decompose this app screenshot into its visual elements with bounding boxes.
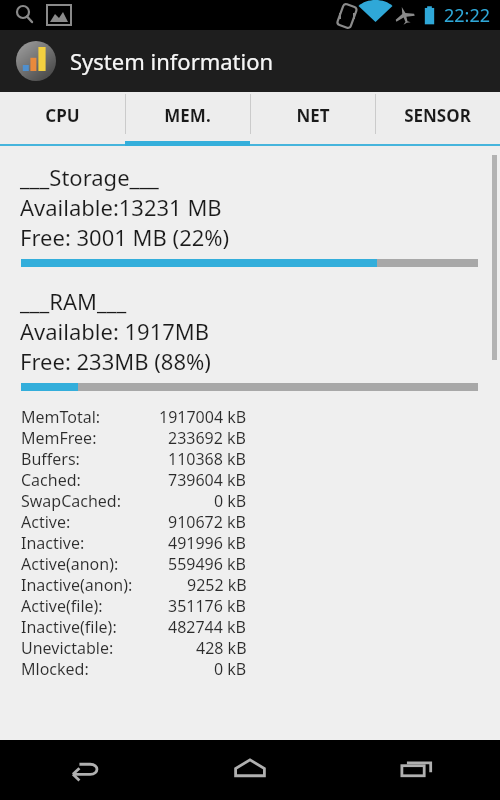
staticText: Inactive(anon):: [21, 574, 133, 595]
staticText: System information: [70, 46, 274, 76]
staticText: MemTotal:: [21, 406, 101, 427]
staticText: Active(anon):: [21, 553, 119, 574]
button[interactable]: Home: [166, 740, 333, 800]
staticText: Unevictable:: [21, 637, 114, 658]
staticText: Buffers:: [21, 448, 80, 469]
staticText: 910672 kB: [168, 511, 247, 532]
staticText: Available: 1917MB: [20, 316, 210, 346]
staticText: 559496 kB: [168, 553, 247, 574]
button[interactable]: Recents: [333, 740, 500, 800]
button[interactable]: System information: [0, 30, 500, 92]
staticText: Active:: [21, 511, 71, 532]
staticText: 491996 kB: [168, 532, 247, 553]
staticText: 428 kB: [196, 637, 247, 658]
staticText: Mlocked:: [21, 658, 89, 679]
staticText: Inactive:: [21, 532, 85, 553]
staticText: 110368 kB: [168, 448, 247, 469]
staticText: 9252 kB: [187, 574, 247, 595]
staticText: Free: 3001 MB (22%): [20, 222, 230, 252]
button[interactable]: CPU: [0, 92, 125, 150]
staticText: 233692 kB: [168, 427, 247, 448]
staticText: MEM.: [164, 104, 211, 127]
staticText: 22:22: [444, 3, 491, 28]
staticText: Available:13231 MB: [20, 192, 222, 222]
staticText: Inactive(file):: [21, 616, 117, 637]
staticText: SwapCached:: [21, 490, 121, 511]
button[interactable]: NET: [250, 92, 375, 150]
staticText: CPU: [45, 104, 80, 127]
button[interactable]: SENSOR: [375, 92, 500, 150]
button[interactable]: MEM.: [125, 92, 250, 150]
staticText: ___RAM___: [20, 286, 127, 316]
staticText: 1917004 kB: [159, 406, 247, 427]
staticText: 0 kB: [214, 658, 247, 679]
staticText: ___Storage___: [20, 162, 159, 192]
staticText: Free: 233MB (88%): [20, 346, 211, 376]
staticText: 482744 kB: [168, 616, 247, 637]
staticText: 0 kB: [214, 490, 247, 511]
staticText: 351176 kB: [168, 595, 247, 616]
staticText: Active(file):: [21, 595, 103, 616]
button[interactable]: Back: [0, 740, 166, 800]
staticText: NET: [296, 104, 330, 127]
staticText: MemFree:: [21, 427, 97, 448]
staticText: Cached:: [21, 469, 81, 490]
staticText: 739604 kB: [168, 469, 247, 490]
staticText: SENSOR: [404, 104, 471, 127]
